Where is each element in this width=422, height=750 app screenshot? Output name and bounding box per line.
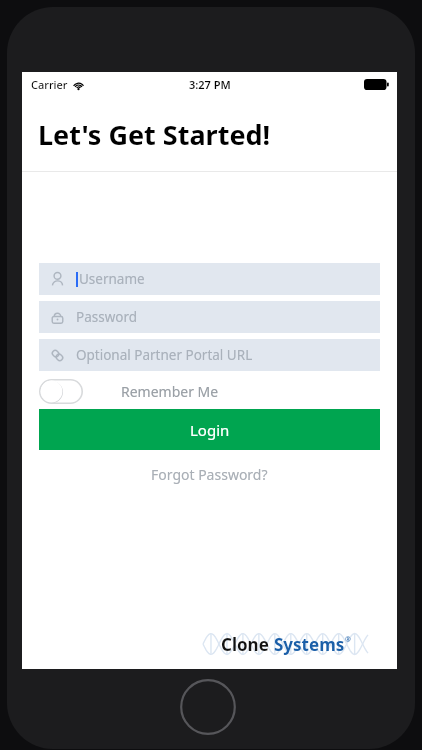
staticText: Systems <box>274 633 345 656</box>
staticText: Remember Me <box>121 382 219 401</box>
staticText: Carrier <box>31 77 68 92</box>
button[interactable]: Optional Partner Portal URL <box>39 339 380 371</box>
staticText: Clone <box>221 633 274 656</box>
staticText: Optional Partner Portal URL <box>76 346 253 364</box>
staticText: Let's Get Started! <box>38 116 271 153</box>
staticText: Login <box>190 420 230 440</box>
button[interactable]: Login <box>39 409 380 450</box>
button[interactable]: Password <box>39 301 380 333</box>
staticText: Password <box>76 308 138 326</box>
staticText: Username <box>79 270 145 288</box>
staticText: 3:27 PM <box>189 77 231 92</box>
button[interactable]: Remember Me toggle <box>39 379 83 404</box>
staticText: ® <box>345 635 351 645</box>
staticText: Forgot Password? <box>151 465 268 484</box>
button[interactable]: Forgot Password? <box>141 462 278 487</box>
button[interactable]: Username <box>39 263 380 295</box>
